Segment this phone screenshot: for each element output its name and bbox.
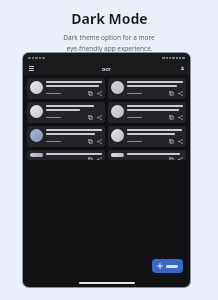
- staticText: Dark Mode: [71, 9, 148, 28]
- button[interactable]: Copy: [88, 139, 93, 144]
- button[interactable]: Copy: [27, 150, 105, 160]
- button[interactable]: Copy: [169, 139, 174, 144]
- button[interactable]: Copy: [108, 150, 186, 160]
- button[interactable]: Copy: [108, 102, 186, 123]
- button[interactable]: Share: [178, 139, 183, 144]
- button[interactable]: Copy: [27, 102, 105, 123]
- button[interactable]: Copy: [27, 126, 105, 147]
- staticText: ocr: [102, 65, 111, 72]
- button[interactable]: Share: [97, 91, 102, 96]
- other: Add: [157, 263, 163, 269]
- button[interactable]: Share: [97, 139, 102, 144]
- button[interactable]: Copy: [169, 91, 174, 96]
- button[interactable]: Share: [97, 115, 102, 120]
- button[interactable]: Copy: [108, 78, 186, 99]
- button[interactable]: Account: [180, 66, 185, 71]
- button[interactable]: Add: [152, 259, 183, 273]
- button[interactable]: Copy: [88, 115, 93, 120]
- button[interactable]: Menu: [28, 65, 35, 72]
- button[interactable]: Copy: [88, 91, 93, 96]
- button[interactable]: Share: [178, 115, 183, 120]
- button[interactable]: Copy: [27, 78, 105, 99]
- button[interactable]: Copy: [169, 115, 174, 120]
- staticText: Dark theme option for a more: [63, 33, 155, 42]
- button[interactable]: Share: [178, 91, 183, 96]
- button[interactable]: Copy: [108, 126, 186, 147]
- staticText: eye-friendly app experience.: [66, 44, 153, 53]
